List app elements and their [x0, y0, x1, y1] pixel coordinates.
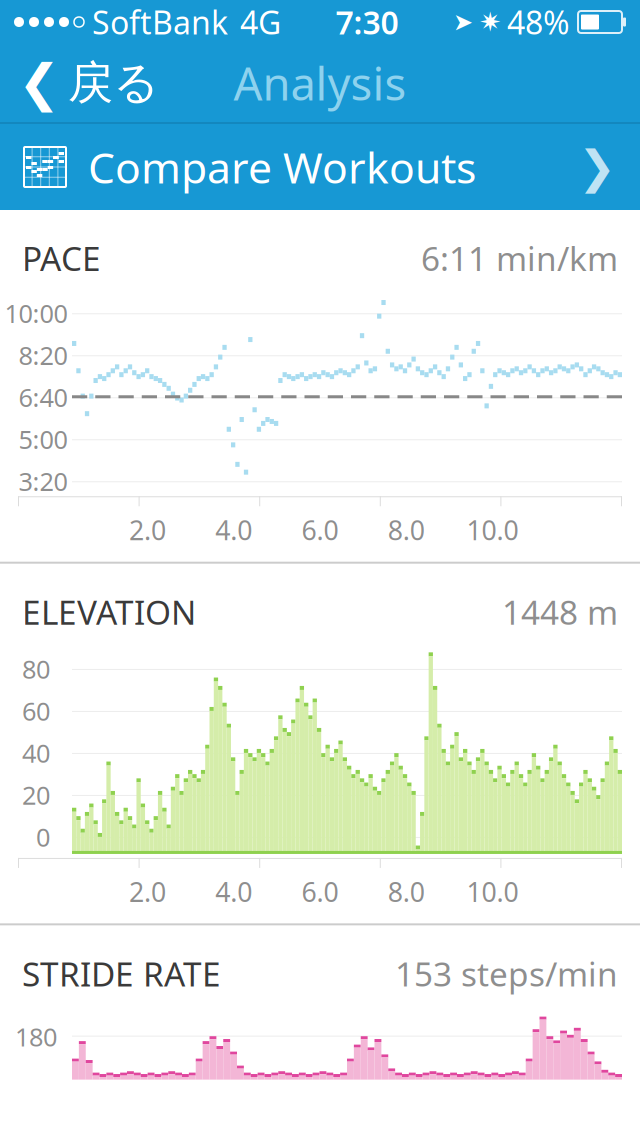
staticText: 2.0 — [129, 512, 166, 548]
staticText: 6.0 — [301, 512, 338, 548]
staticText: ELEVATION — [22, 590, 196, 634]
staticText: 153 steps/min — [395, 951, 618, 996]
staticText: 4.0 — [215, 512, 252, 548]
button[interactable]: ❮ — [0, 44, 177, 122]
staticText: 8:20 — [18, 338, 67, 372]
staticText: 6:11 min/km — [421, 236, 618, 280]
staticText: ❯ — [578, 141, 616, 193]
staticText: SoftBank — [92, 1, 228, 43]
staticText: 180 — [15, 1020, 57, 1053]
staticText: ➤ — [453, 8, 473, 36]
staticText: 8.0 — [388, 874, 425, 909]
staticText: 48% — [507, 1, 570, 43]
staticText: ✷ — [479, 7, 501, 37]
staticText: 5:00 — [18, 422, 67, 456]
staticText: 0 — [36, 820, 50, 854]
staticText: 6:40 — [18, 380, 67, 414]
staticText: 6.0 — [301, 874, 338, 909]
staticText: STRIDE RATE — [22, 951, 221, 996]
staticText: 80 — [22, 652, 50, 686]
staticText: 1448 m — [502, 590, 618, 634]
staticText: 8.0 — [388, 512, 425, 548]
staticText: ❮ — [18, 54, 60, 112]
staticText: 20 — [22, 778, 50, 812]
staticText: 2.0 — [129, 874, 166, 909]
staticText: 戻る — [68, 55, 159, 111]
staticText: Compare Workouts — [88, 139, 476, 195]
staticText: PACE — [22, 236, 101, 280]
button[interactable]: Compare Workouts — [0, 124, 640, 210]
staticText: 4.0 — [215, 874, 252, 909]
staticText: 7:30 — [335, 1, 398, 43]
staticText: 40 — [22, 736, 50, 770]
staticText: 60 — [22, 694, 50, 728]
staticText: 10.0 — [467, 512, 519, 548]
staticText: 3:20 — [18, 464, 67, 498]
staticText: Analysis — [233, 53, 406, 113]
staticText: 10:00 — [4, 296, 67, 330]
staticText: 10.0 — [467, 874, 519, 909]
staticText: 4G — [240, 1, 281, 43]
